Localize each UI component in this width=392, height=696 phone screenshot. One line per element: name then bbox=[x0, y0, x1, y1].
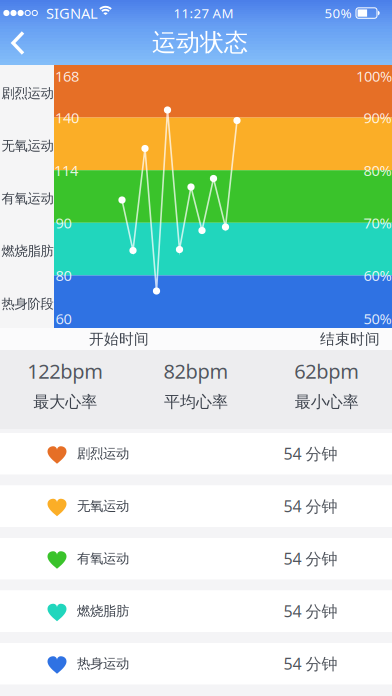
button[interactable]: 剧烈运动 bbox=[0, 433, 392, 474]
staticText: 燃烧脂肪 bbox=[1, 243, 53, 259]
button[interactable]: 无氧运动 bbox=[0, 485, 392, 527]
staticText: 70% bbox=[363, 213, 391, 233]
staticText: 122bpm bbox=[27, 358, 103, 384]
staticText: 54 分钟 bbox=[283, 495, 337, 517]
staticText: 80% bbox=[363, 160, 391, 180]
staticText: 热身阶段 bbox=[1, 295, 53, 312]
button[interactable]: 有氧运动 bbox=[0, 538, 392, 579]
staticText: 54 分钟 bbox=[283, 443, 337, 464]
staticText: 90% bbox=[363, 108, 391, 127]
staticText: 有氧运动 bbox=[1, 190, 53, 207]
staticText: 62bpm bbox=[294, 358, 359, 384]
staticText: 11:27 AM bbox=[173, 4, 233, 22]
staticText: 最小心率 bbox=[295, 392, 359, 412]
staticText: 平均心率 bbox=[164, 392, 228, 412]
staticText: 54 分钟 bbox=[283, 548, 337, 569]
staticText: 54 分钟 bbox=[283, 600, 337, 622]
staticText: 剧烈运动 bbox=[77, 445, 129, 462]
staticText: 50% bbox=[324, 4, 351, 22]
staticText: 热身运动 bbox=[77, 655, 129, 672]
staticText: 燃烧脂肪 bbox=[77, 603, 129, 619]
staticText: 80 bbox=[55, 266, 71, 285]
staticText: 82bpm bbox=[163, 358, 228, 384]
staticText: 140 bbox=[55, 108, 79, 127]
staticText: SIGNAL bbox=[46, 3, 98, 23]
staticText: 60 bbox=[55, 309, 71, 328]
staticText: 50% bbox=[363, 309, 391, 328]
staticText: 结束时间 bbox=[320, 330, 380, 348]
staticText: 100% bbox=[356, 66, 392, 86]
staticText: 有氧运动 bbox=[77, 550, 129, 567]
staticText: 90 bbox=[55, 213, 71, 233]
staticText: 最大心率 bbox=[33, 392, 97, 412]
staticText: 54 分钟 bbox=[283, 653, 337, 674]
button[interactable]: Back bbox=[0, 24, 44, 63]
staticText: 无氧运动 bbox=[77, 498, 129, 514]
staticText: 开始时间 bbox=[89, 330, 149, 348]
staticText: 60% bbox=[363, 266, 391, 285]
staticText: 114 bbox=[54, 160, 78, 180]
staticText: 168 bbox=[55, 66, 79, 86]
button[interactable]: 热身运动 bbox=[0, 643, 392, 684]
staticText: 无氧运动 bbox=[1, 138, 53, 154]
staticText: 运动状态 bbox=[152, 28, 248, 57]
button[interactable]: 燃烧脂肪 bbox=[0, 590, 392, 632]
staticText: 剧烈运动 bbox=[1, 85, 53, 101]
